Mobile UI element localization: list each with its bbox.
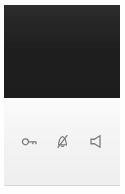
button[interactable]: Unlock door: [12, 126, 46, 156]
button[interactable]: Speaker volume: [79, 126, 112, 156]
button[interactable]: Mute ringer: [46, 126, 79, 156]
button[interactable]: Video display: [4, 5, 120, 98]
